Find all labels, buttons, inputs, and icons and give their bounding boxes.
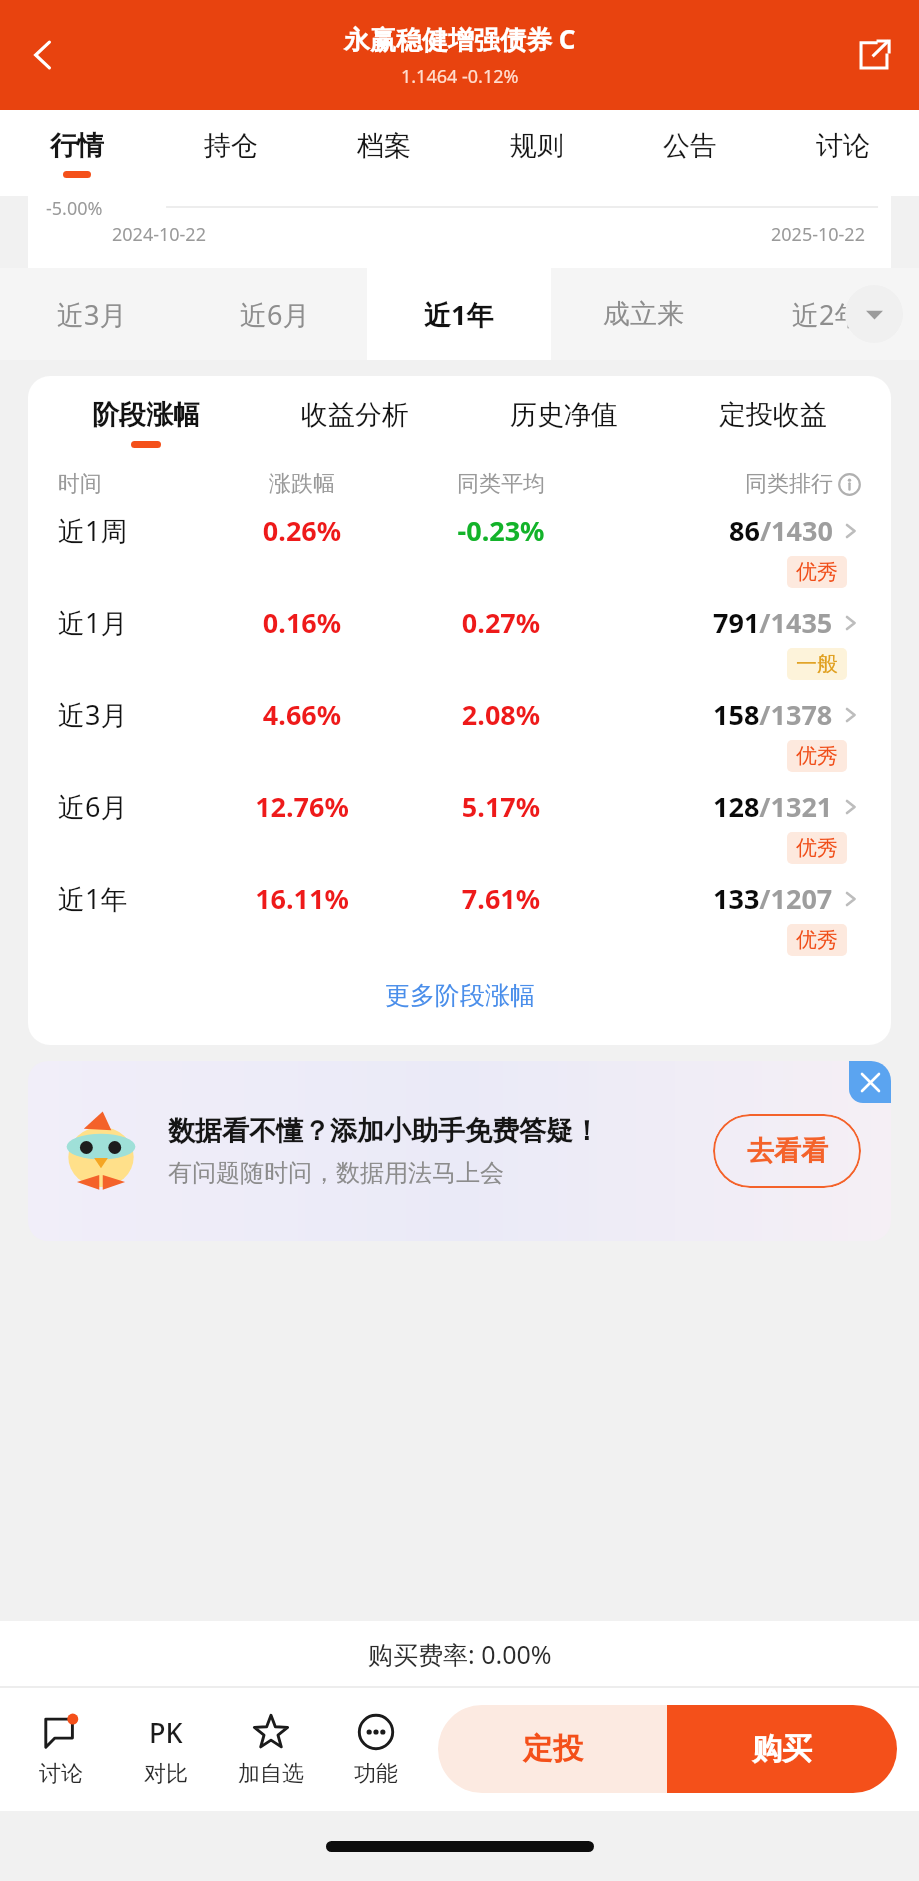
staticText: 收益分析 [301,398,409,432]
button[interactable]: 更多阶段涨幅 [28,980,891,1011]
staticText: 4.66% [208,696,396,733]
staticText: 16.11% [208,880,396,917]
button[interactable]: 近1年 [367,268,551,360]
button[interactable]: 数据看不懂？添加小助手免费答疑！ [28,1061,891,1241]
button[interactable]: 近3月 [28,682,891,774]
other: Info [838,473,861,496]
staticText: 同类排行 [745,470,833,498]
staticText: 档案 [357,129,411,163]
button[interactable]: 去看看 [713,1114,861,1188]
button[interactable]: 成立来 [551,268,735,360]
staticText: 持仓 [204,129,258,163]
staticText: 5.17% [396,788,606,825]
staticText: 158/1378 [713,696,833,733]
staticText: 时间 [58,470,208,498]
staticText: 对比 [144,1760,188,1788]
button[interactable]: 讨论 [6,1687,116,1811]
button[interactable]: 持仓 [154,110,307,196]
staticText: 2024-10-22 [112,222,206,247]
button[interactable]: 规则 [460,110,613,196]
staticText: 0.16% [208,604,396,641]
staticText: 优秀 [796,835,838,861]
staticText: 1.1464 -0.12% [401,64,519,89]
staticText: 永赢稳健增强债券 C [344,21,576,57]
staticText: 数据看不懂？添加小助手免费答疑！ [168,1114,600,1148]
staticText: 成立来 [603,297,684,331]
button[interactable]: 收益分析 [250,398,459,448]
staticText: 优秀 [796,927,838,953]
button[interactable]: 近2年 [735,268,919,360]
button[interactable]: 讨论 [766,110,919,196]
staticText: 0.26% [208,512,396,549]
staticText: 近3月 [58,696,208,733]
button[interactable]: 行情 [0,110,154,196]
staticText: 128/1321 [713,788,833,825]
button[interactable]: 公告 [613,110,766,196]
staticText: 公告 [663,129,717,163]
staticText: 优秀 [796,559,838,585]
staticText: 近1年 [424,296,494,333]
staticText: 讨论 [39,1760,83,1788]
staticText: 购买 [752,1730,812,1768]
staticText: 同类平均 [396,470,606,498]
button[interactable]: 近1周 [28,498,891,590]
staticText: 近6月 [240,296,310,333]
button[interactable]: 近6月 [28,774,891,866]
staticText: 阶段涨幅 [92,398,200,432]
button[interactable]: 近3月 [0,268,183,360]
button[interactable]: 历史净值 [459,398,668,448]
staticText: 133/1207 [713,880,833,917]
staticText: 加自选 [238,1760,304,1788]
staticText: 2025-10-22 [771,222,865,247]
button[interactable]: 功能 [326,1687,426,1811]
staticText: -0.23% [396,512,606,549]
staticText: 近3月 [57,296,127,333]
button[interactable]: 加自选 [216,1687,326,1811]
staticText: 近1周 [58,512,208,549]
button[interactable]: 档案 [307,110,460,196]
button[interactable]: PK [116,1687,216,1811]
staticText: 讨论 [816,129,870,163]
staticText: 7.61% [396,880,606,917]
staticText: 近2年 [792,296,862,333]
staticText: 行情 [50,129,104,163]
button[interactable]: 定投 [438,1705,667,1793]
staticText: 更多阶段涨幅 [385,980,535,1011]
button[interactable]: 阶段涨幅 [42,398,250,448]
staticText: 12.76% [208,788,396,825]
staticText: 去看看 [747,1134,828,1168]
staticText: 791/1435 [713,604,833,641]
staticText: 86/1430 [729,512,833,549]
button[interactable]: Close [849,1061,891,1103]
button[interactable]: 购买 [667,1705,897,1793]
staticText: 有问题随时问，数据用法马上会 [168,1158,504,1188]
staticText: 近6月 [58,788,208,825]
button[interactable]: Share [843,24,905,86]
button[interactable]: 近1年 [28,866,891,958]
button[interactable]: 定投收益 [668,398,877,448]
staticText: 涨跌幅 [208,470,396,498]
button[interactable]: More periods [845,285,903,343]
staticText: -5.00% [46,196,103,221]
staticText: 近1月 [58,604,208,641]
staticText: 一般 [796,651,838,677]
staticText: 购买费率: 0.00% [368,1637,552,1671]
staticText: 定投 [523,1730,583,1768]
staticText: 功能 [354,1760,398,1788]
button[interactable]: 近6月 [183,268,367,360]
staticText: 0.27% [396,604,606,641]
staticText: 历史净值 [510,398,618,432]
staticText: PK [149,1714,183,1751]
staticText: 2.08% [396,696,606,733]
staticText: 定投收益 [719,398,827,432]
button[interactable]: 近1月 [28,590,891,682]
staticText: 规则 [510,129,564,163]
staticText: 优秀 [796,743,838,769]
staticText: 近1年 [58,880,208,917]
button[interactable]: Back [12,24,74,86]
